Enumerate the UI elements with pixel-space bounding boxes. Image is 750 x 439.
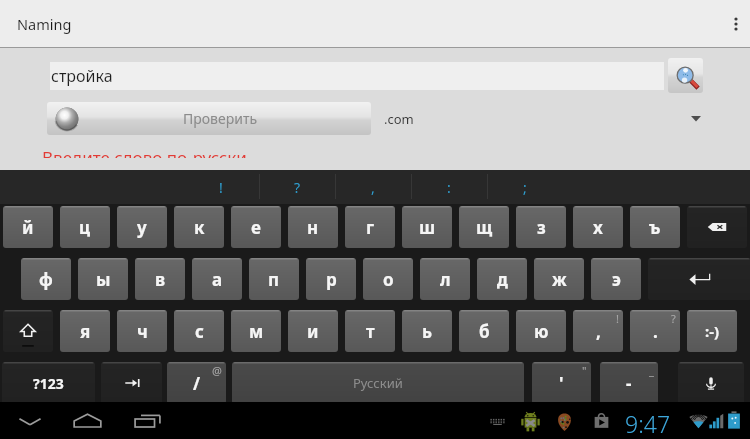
button[interactable]: Проверить — [47, 102, 371, 135]
staticText: й — [22, 216, 34, 239]
button[interactable]: и — [288, 310, 338, 352]
button[interactable]: ? — [259, 170, 335, 204]
staticText: в — [155, 268, 166, 291]
button[interactable]: х — [573, 206, 623, 248]
staticText: ы — [96, 268, 111, 291]
staticText: л — [440, 268, 451, 291]
staticText: ъ — [649, 216, 661, 239]
staticText: с — [195, 320, 204, 343]
staticText: г — [366, 216, 375, 239]
staticText: о — [383, 268, 394, 291]
button[interactable]: л — [420, 258, 470, 300]
button[interactable]: / — [167, 362, 226, 404]
button[interactable]: я — [60, 310, 110, 352]
button[interactable]: н — [288, 206, 338, 248]
button[interactable]: : — [411, 170, 487, 204]
button[interactable]: ъ — [630, 206, 680, 248]
button[interactable]: а — [192, 258, 242, 300]
button[interactable]: м — [231, 310, 281, 352]
button[interactable]: ю — [516, 310, 566, 352]
staticText: з — [537, 216, 546, 239]
staticText: ; — [523, 178, 527, 197]
button[interactable]: ц — [60, 206, 110, 248]
button[interactable]: :-) — [687, 310, 737, 352]
button[interactable]: ; — [487, 170, 563, 204]
staticText: .com — [384, 110, 414, 128]
staticText: х — [593, 216, 603, 239]
button[interactable]: Tab — [101, 362, 162, 404]
staticText: ц — [79, 216, 91, 239]
button[interactable]: Recent apps — [126, 402, 168, 439]
button[interactable]: , — [573, 310, 623, 352]
button[interactable]: д — [477, 258, 527, 300]
staticText: и — [307, 320, 319, 343]
button[interactable]: ' — [532, 362, 591, 404]
staticText: н — [307, 216, 319, 239]
staticText: а — [212, 268, 223, 291]
button[interactable]: , — [335, 170, 411, 204]
staticText: ю — [534, 320, 549, 343]
button[interactable]: щ — [459, 206, 509, 248]
button[interactable]: т — [345, 310, 395, 352]
button[interactable]: Shift — [3, 310, 53, 352]
staticText: щ — [476, 216, 493, 239]
button[interactable]: Hide keyboard — [8, 402, 51, 439]
staticText: / — [193, 372, 201, 395]
button[interactable]: ?123 — [2, 362, 95, 404]
staticText: , — [596, 320, 601, 343]
button[interactable]: г — [345, 206, 395, 248]
staticText: п — [268, 268, 280, 291]
button[interactable]: ф — [21, 258, 71, 300]
button[interactable]: ш — [402, 206, 452, 248]
button[interactable]: у — [117, 206, 167, 248]
staticText: м — [249, 320, 264, 343]
button[interactable]: ! — [183, 170, 259, 204]
staticText: - — [626, 372, 632, 395]
button[interactable]: Home — [66, 402, 108, 439]
button[interactable]: . — [630, 310, 680, 352]
staticText: _ — [649, 363, 654, 378]
button[interactable]: з — [516, 206, 566, 248]
button[interactable]: стройка — [50, 62, 664, 90]
staticText: . — [653, 320, 658, 343]
staticText: ! — [219, 178, 223, 197]
button[interactable]: Delete — [687, 206, 747, 248]
staticText: :-) — [705, 321, 720, 341]
button[interactable]: р — [306, 258, 356, 300]
staticText: к — [194, 216, 205, 239]
staticText: т — [366, 320, 375, 343]
button[interactable]: More options — [715, 0, 750, 47]
staticText: ? — [294, 178, 301, 197]
button[interactable]: ы — [78, 258, 128, 300]
staticText: 9:47 — [625, 408, 671, 439]
button[interactable]: б — [459, 310, 509, 352]
button[interactable]: Domain dropdown — [680, 102, 712, 134]
staticText: " — [582, 363, 587, 378]
button[interactable]: в — [135, 258, 185, 300]
button[interactable]: Enter — [648, 258, 750, 300]
button[interactable]: п — [249, 258, 299, 300]
button[interactable]: Voice input — [678, 362, 744, 404]
staticText: у — [137, 216, 147, 239]
button[interactable]: э — [591, 258, 641, 300]
staticText: Проверить — [183, 109, 258, 128]
staticText: ' — [559, 372, 564, 395]
button[interactable]: й — [3, 206, 53, 248]
staticText: Введите слово по-русски — [42, 146, 247, 158]
button[interactable]: Русский — [232, 362, 524, 404]
staticText: б — [479, 320, 490, 343]
button[interactable]: Search — [668, 58, 703, 93]
button[interactable]: к — [174, 206, 224, 248]
staticText: ь — [422, 320, 433, 343]
button[interactable]: ь — [402, 310, 452, 352]
button[interactable]: ж — [534, 258, 584, 300]
staticText: @ — [212, 363, 222, 378]
button[interactable]: ч — [117, 310, 167, 352]
button[interactable]: - — [600, 362, 658, 404]
button[interactable]: о — [363, 258, 413, 300]
button[interactable]: с — [174, 310, 224, 352]
button[interactable]: е — [231, 206, 281, 248]
staticText: р — [326, 268, 337, 291]
staticText: ж — [552, 268, 567, 291]
staticText: ш — [419, 216, 436, 239]
